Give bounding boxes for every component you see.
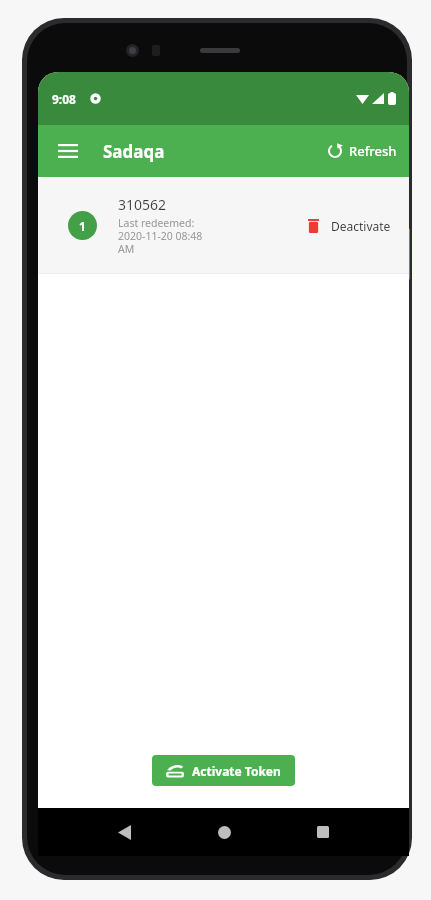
staticText: Sadaqa <box>103 140 165 163</box>
button[interactable]: Recent apps <box>305 814 341 850</box>
button[interactable]: Open navigation menu <box>48 131 88 171</box>
button[interactable]: Deactivate <box>302 210 397 242</box>
button[interactable]: Activate Token <box>152 755 295 786</box>
staticText: Refresh <box>349 142 397 160</box>
staticText: 9:08 <box>52 91 76 107</box>
staticText: 1 <box>79 218 86 234</box>
button[interactable]: Back <box>106 814 142 850</box>
button[interactable]: Refresh <box>321 136 403 166</box>
button[interactable]: Home <box>206 814 242 850</box>
staticText: Last redeemed: 2020-11-20 08:48 AM <box>118 216 203 256</box>
staticText: Deactivate <box>331 218 391 234</box>
button[interactable]: 1 <box>38 177 409 274</box>
staticText: 310562 <box>118 195 167 214</box>
staticText: Activate Token <box>192 763 281 779</box>
